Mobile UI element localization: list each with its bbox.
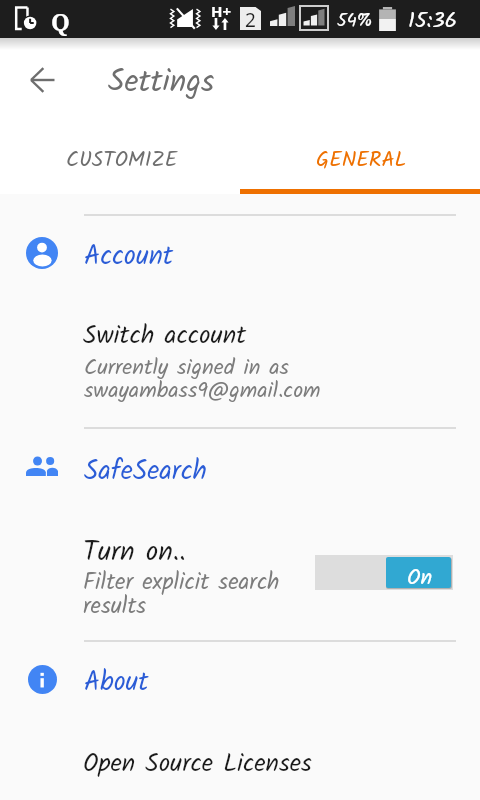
- staticText: Open Source Licenses: [83, 744, 312, 784]
- button[interactable]: Open Source Licenses: [0, 740, 480, 800]
- staticText: GENERAL: [316, 143, 407, 177]
- staticText: Turn on..: [83, 531, 186, 575]
- staticText: SafeSearch: [84, 451, 207, 494]
- staticText: Account: [84, 236, 174, 278]
- button[interactable]: GENERAL: [240, 136, 480, 194]
- staticText: On: [407, 561, 433, 588]
- button[interactable]: Switch account: [0, 310, 480, 410]
- staticText: results: [83, 589, 147, 626]
- staticText: Filter explicit search: [83, 565, 280, 602]
- staticText: Q: [51, 5, 70, 38]
- button[interactable]: About: [0, 655, 480, 707]
- staticText: Currently signed in as: [84, 351, 289, 386]
- button[interactable]: Navigate up: [18, 56, 66, 104]
- staticText: 15:36: [408, 4, 457, 39]
- button[interactable]: Turn on..: [0, 525, 480, 625]
- staticText: 54%: [337, 7, 373, 36]
- staticText: swayambass9@gmail.com: [84, 374, 321, 409]
- staticText: Switch account: [83, 316, 247, 356]
- button[interactable]: SafeSearch switch, On: [315, 555, 453, 590]
- button[interactable]: CUSTOMIZE: [0, 136, 240, 194]
- staticText: Settings: [108, 58, 215, 107]
- staticText: 2: [245, 7, 256, 30]
- button[interactable]: SafeSearch: [0, 442, 480, 494]
- button[interactable]: Account: [0, 229, 480, 281]
- staticText: About: [84, 662, 149, 704]
- staticText: H+: [211, 1, 232, 21]
- staticText: CUSTOMIZE: [66, 143, 178, 177]
